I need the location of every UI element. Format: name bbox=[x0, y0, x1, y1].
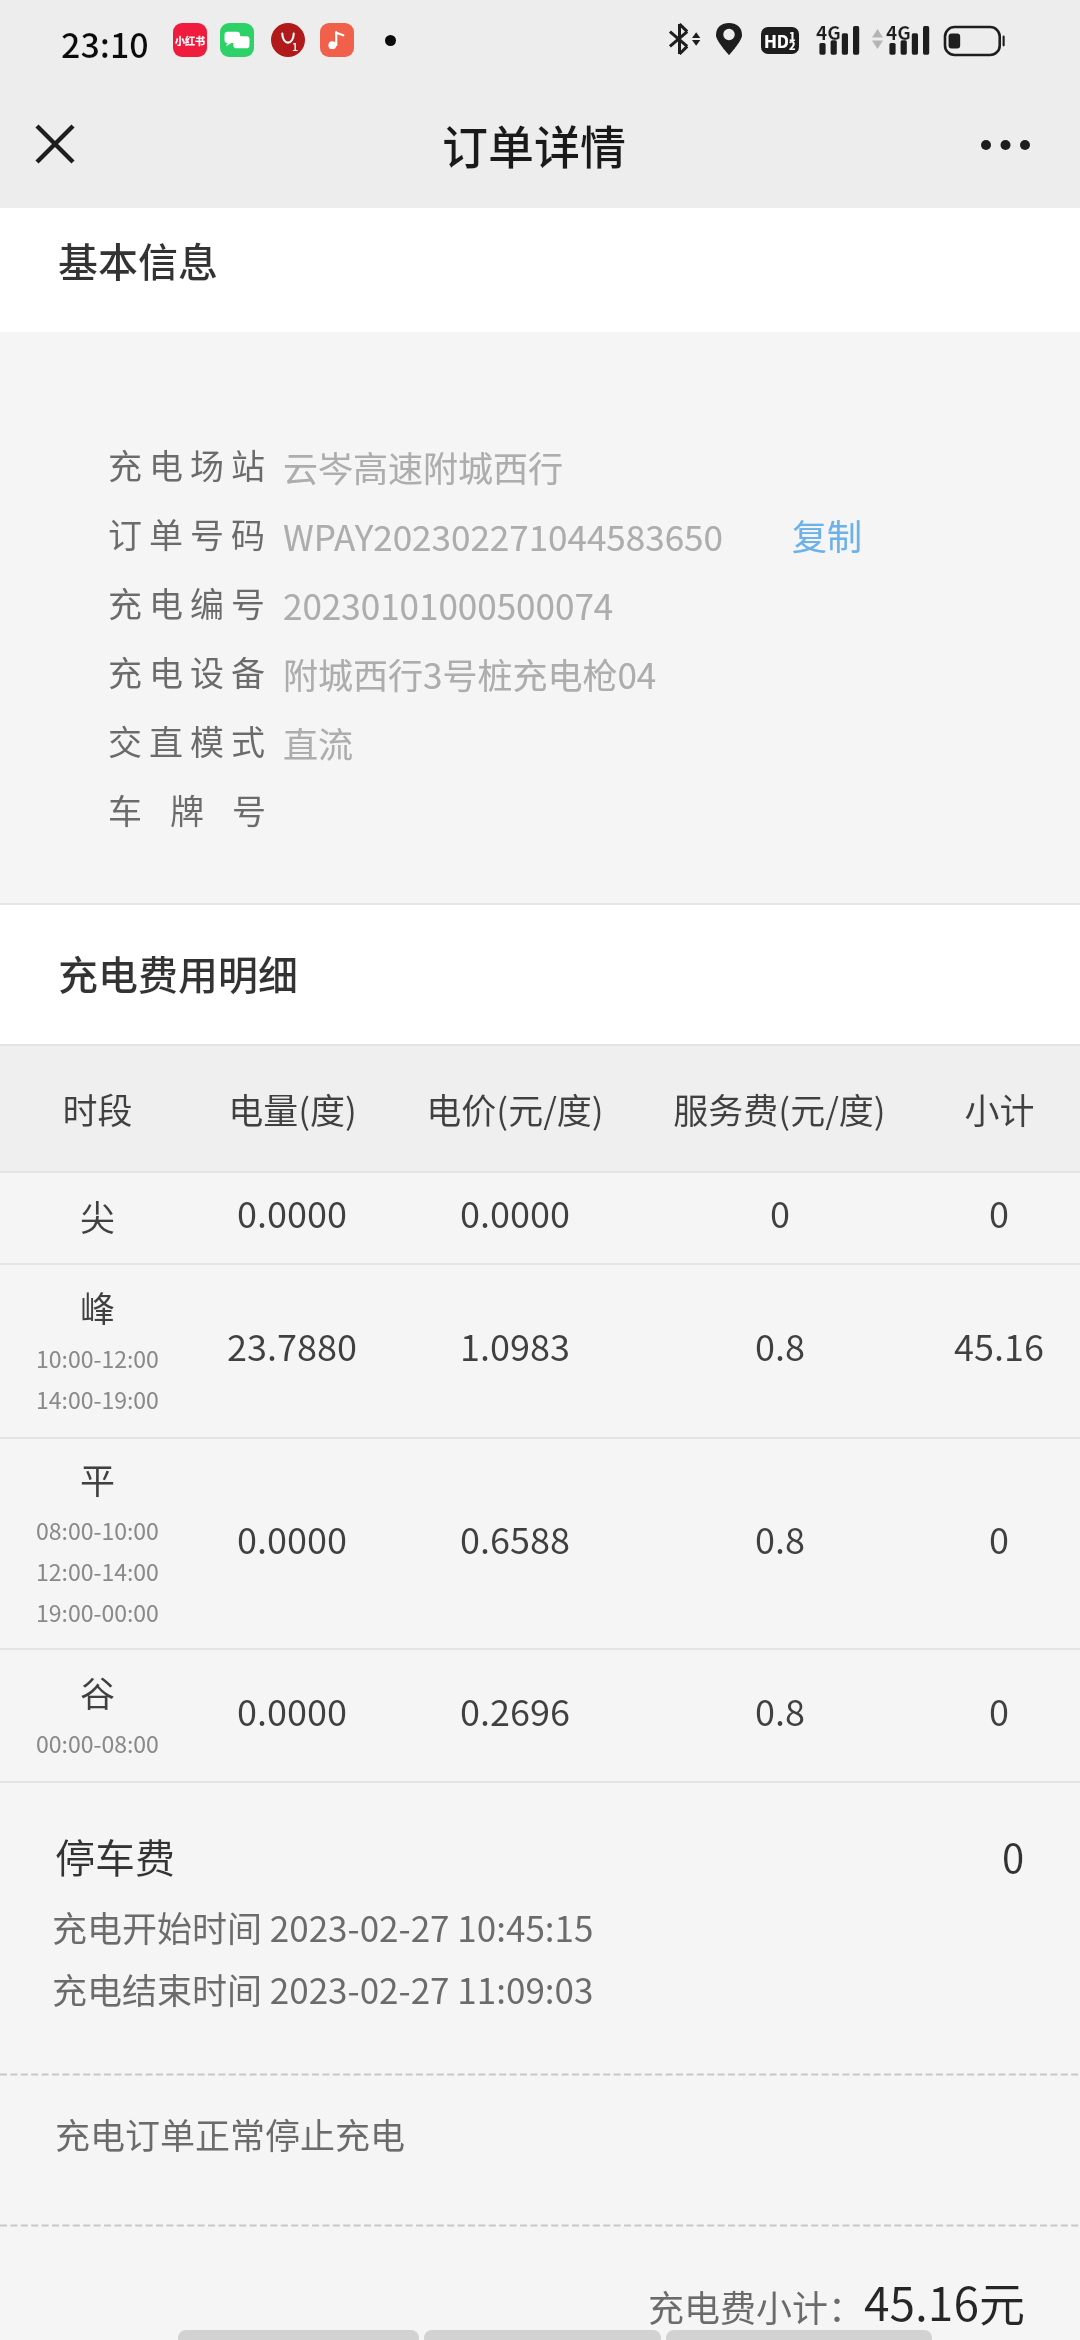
staticText: 1 bbox=[789, 28, 796, 44]
staticText: 车牌号 bbox=[108, 785, 294, 834]
button[interactable]: 峰 bbox=[0, 1265, 1080, 1437]
staticText: 0.0000 bbox=[460, 1186, 570, 1238]
staticText: 充电场站 bbox=[108, 440, 272, 489]
staticText: WPAY202302271044583650 bbox=[283, 510, 723, 561]
button[interactable]: 订单号码 bbox=[0, 492, 1080, 561]
button[interactable]: 复制 bbox=[780, 503, 875, 566]
staticText: 充电费用明细 bbox=[58, 944, 298, 1002]
staticText: 平 bbox=[80, 1453, 116, 1504]
button[interactable]: 平 bbox=[0, 1439, 1080, 1648]
staticText: 0 bbox=[989, 1512, 1009, 1564]
staticText: 附城西行3号桩充电枪04 bbox=[283, 648, 657, 699]
staticText: 充电费小计： bbox=[648, 2280, 865, 2332]
staticText: 0 bbox=[989, 1684, 1009, 1736]
staticText: 谷 bbox=[80, 1666, 116, 1717]
staticText: 0.0000 bbox=[237, 1684, 347, 1736]
button[interactable]: Action 3 bbox=[666, 2330, 932, 2340]
staticText: 基本信息 bbox=[58, 231, 218, 289]
button[interactable]: Action 2 bbox=[424, 2330, 661, 2340]
staticText: 0 bbox=[770, 1186, 790, 1238]
staticText: 4G bbox=[886, 18, 911, 46]
button[interactable]: 谷 bbox=[0, 1650, 1080, 1781]
button[interactable]: More options bbox=[950, 93, 1060, 203]
staticText: 订单详情 bbox=[442, 111, 626, 178]
button[interactable]: Action 1 bbox=[178, 2330, 419, 2340]
staticText: 0.8 bbox=[755, 1512, 805, 1564]
staticText: 充电编号 bbox=[108, 578, 272, 627]
staticText: 20230101000500074 bbox=[283, 579, 614, 630]
other: Signal bbox=[816, 23, 860, 55]
button[interactable]: Close bbox=[0, 93, 110, 203]
staticText: 充电结束时间 2023-02-27 11:09:03 bbox=[52, 1963, 594, 2014]
staticText: 0.0000 bbox=[237, 1186, 347, 1238]
staticText: 电价(元/度) bbox=[426, 1083, 604, 1134]
staticText: 时段 bbox=[62, 1083, 133, 1134]
staticText: 12:00-14:00 bbox=[36, 1554, 159, 1587]
staticText: 45.16元 bbox=[864, 2268, 1025, 2335]
staticText: 2 bbox=[789, 37, 796, 53]
staticText: 4G bbox=[816, 18, 841, 46]
other: Location bbox=[716, 23, 742, 55]
button[interactable]: 充电编号 bbox=[0, 561, 1080, 630]
staticText: 0 bbox=[989, 1186, 1009, 1238]
button[interactable]: 充电场站 bbox=[0, 423, 1080, 492]
staticText: 小红书 bbox=[175, 33, 205, 47]
staticText: 复制 bbox=[792, 509, 863, 560]
staticText: 交直模式 bbox=[108, 716, 272, 765]
button[interactable]: 车牌号 bbox=[0, 768, 1080, 837]
staticText: 1 bbox=[292, 38, 299, 54]
staticText: 23.7880 bbox=[227, 1319, 357, 1371]
staticText: 45.16 bbox=[954, 1319, 1044, 1371]
other: HD voice bbox=[761, 27, 799, 54]
staticText: 0.2696 bbox=[460, 1684, 570, 1736]
staticText: 充电订单正常停止充电 bbox=[55, 2108, 406, 2159]
staticText: 14:00-19:00 bbox=[36, 1382, 159, 1415]
staticText: 10:00-12:00 bbox=[36, 1341, 159, 1374]
staticText: 充电设备 bbox=[108, 647, 272, 696]
staticText: 小计 bbox=[964, 1083, 1035, 1134]
staticText: 尖 bbox=[80, 1190, 116, 1241]
staticText: 停车费 bbox=[55, 1827, 175, 1885]
button[interactable]: 交直模式 bbox=[0, 699, 1080, 768]
staticText: 0.6588 bbox=[460, 1512, 570, 1564]
staticText: 08:00-10:00 bbox=[36, 1513, 159, 1546]
staticText: 0.8 bbox=[755, 1684, 805, 1736]
button[interactable]: 充电设备 bbox=[0, 630, 1080, 699]
staticText: 1.0983 bbox=[460, 1319, 570, 1371]
staticText: 00:00-08:00 bbox=[36, 1726, 159, 1759]
other: Signal bbox=[886, 23, 930, 55]
staticText: 23:10 bbox=[61, 19, 149, 68]
staticText: 订单号码 bbox=[108, 509, 272, 558]
staticText: HD bbox=[764, 28, 790, 53]
staticText: 直流 bbox=[283, 717, 354, 768]
staticText: 电量(度) bbox=[228, 1083, 357, 1134]
button[interactable]: 尖 bbox=[0, 1173, 1080, 1263]
staticText: 0.0000 bbox=[237, 1512, 347, 1564]
staticText: 峰 bbox=[80, 1281, 116, 1332]
staticText: 0.8 bbox=[755, 1319, 805, 1371]
other: Battery bbox=[944, 26, 1005, 56]
staticText: 服务费(元/度) bbox=[673, 1083, 886, 1134]
other: Bluetooth bbox=[668, 23, 700, 55]
staticText: 充电开始时间 2023-02-27 10:45:15 bbox=[52, 1901, 594, 1952]
staticText: 云岑高速附城西行 bbox=[283, 441, 564, 492]
staticText: 19:00-00:00 bbox=[36, 1595, 159, 1628]
staticText: 0 bbox=[1002, 1827, 1025, 1885]
